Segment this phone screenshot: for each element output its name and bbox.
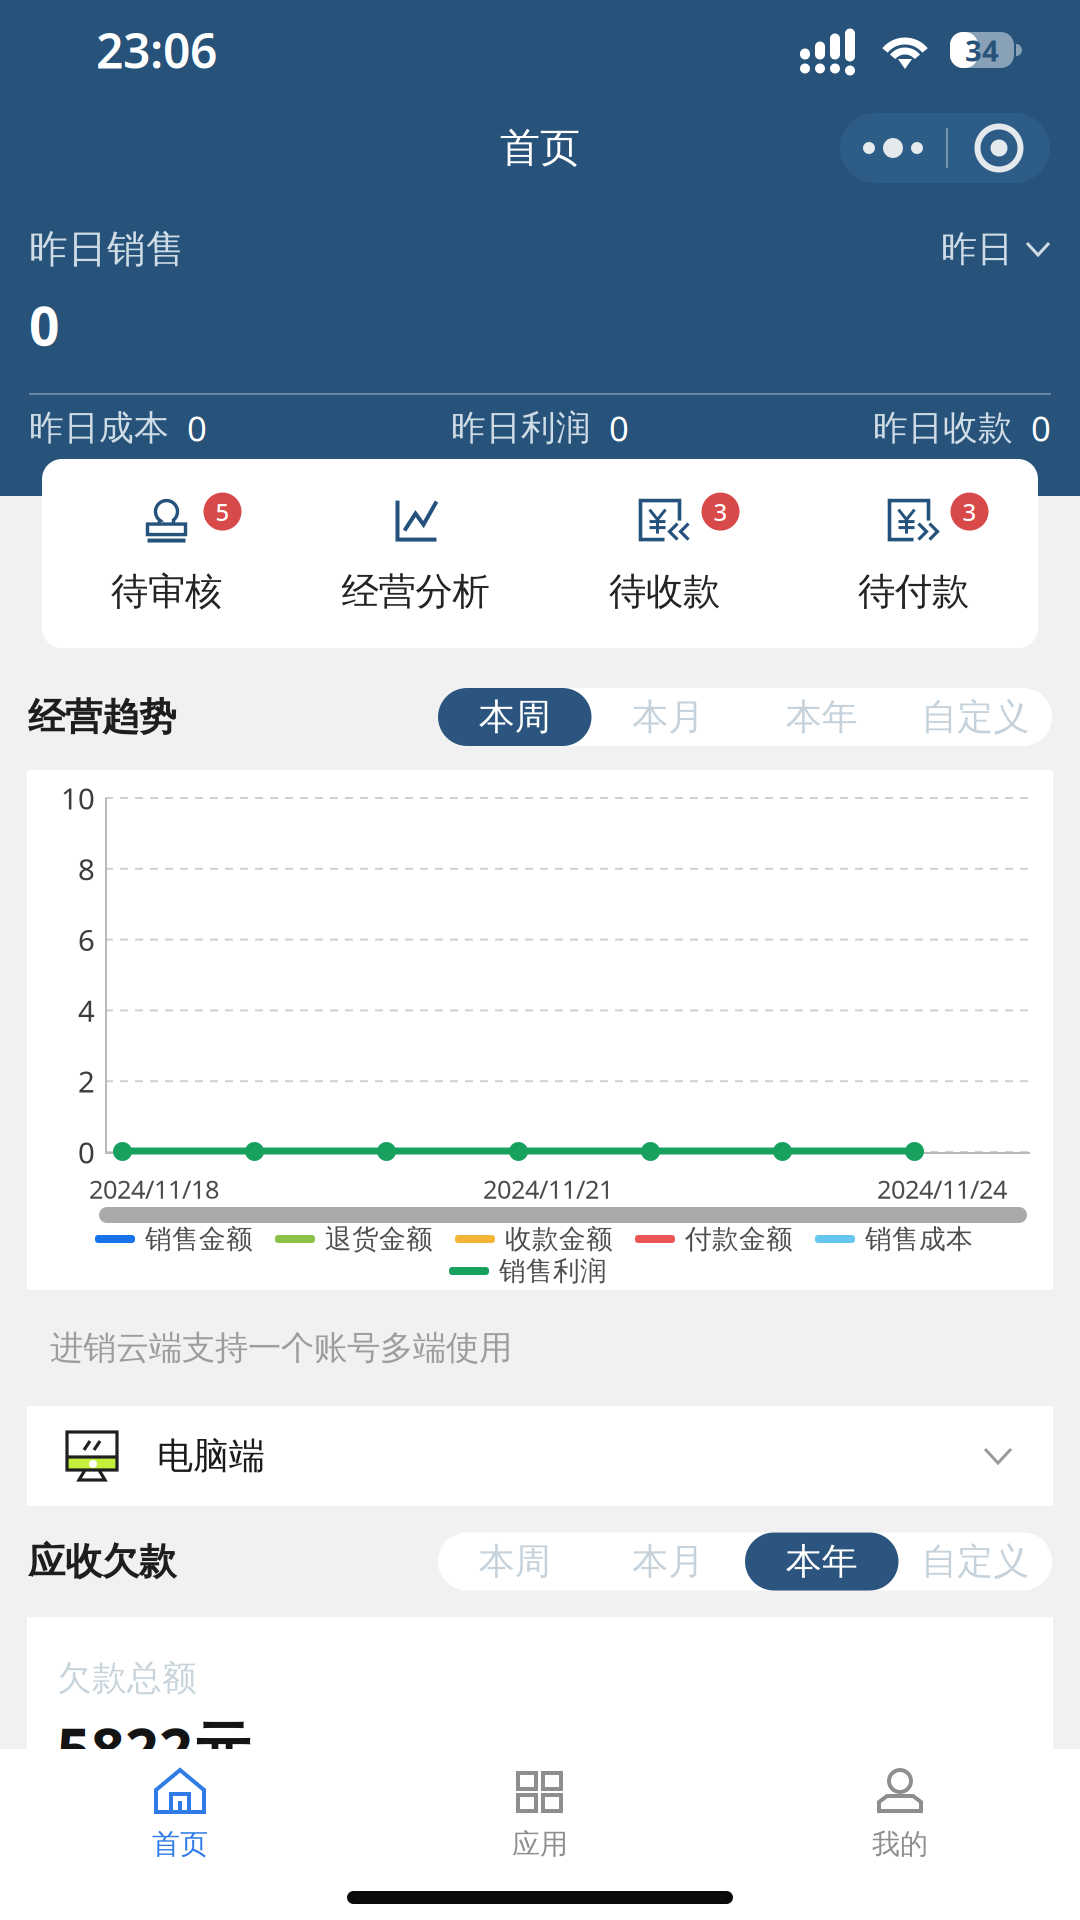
staticText: 3 [962,496,976,527]
staticText: 0 [609,405,629,451]
staticText: 待审核 [111,569,222,614]
button[interactable]: 首页 [0,1749,360,1867]
button[interactable]: 应用 [360,1749,720,1867]
staticText: 销售金额 [145,1223,253,1255]
staticText: 2024/11/21 [483,1172,613,1206]
staticText: 23:06 [96,18,217,82]
staticText: 本月 [632,1539,704,1584]
staticText: 本周 [479,1539,551,1584]
staticText: 昨日销售 [29,225,185,273]
button[interactable]: 自定义 [898,688,1052,746]
staticText: 0 [187,405,207,451]
staticText: 收款金额 [505,1223,613,1255]
button[interactable]: More [840,113,946,183]
button[interactable]: 5 [42,493,291,614]
staticText: 2024/11/24 [877,1172,1007,1206]
staticText: 首页 [152,1827,208,1861]
staticText: 本年 [786,1539,858,1584]
staticText: 退货金额 [325,1223,433,1255]
staticText: 销售利润 [499,1255,607,1287]
staticText: 2 [78,1062,95,1101]
staticText: 昨日收款 [873,407,1013,449]
staticText: 8 [78,849,95,888]
button[interactable]: 自定义 [898,1532,1052,1590]
staticText: 付款金额 [685,1223,793,1255]
staticText: 0 [78,1132,95,1171]
staticText: 0 [29,290,60,360]
staticText: 本年 [786,695,858,739]
staticText: 首页 [500,123,580,172]
button[interactable]: 我的 [720,1749,1080,1867]
staticText: 应收欠款 [28,1539,176,1584]
button[interactable]: 本月 [591,1532,745,1590]
staticText: 待收款 [609,569,720,614]
staticText: 欠款总额 [57,1657,197,1700]
button[interactable]: 昨日 [941,227,1051,271]
staticText: 本周 [479,695,551,739]
button[interactable]: 本周 [438,688,591,746]
button[interactable]: 本年 [745,1532,898,1590]
button[interactable]: Close [948,113,1050,183]
staticText: 3 [713,496,727,527]
staticText: 5822元 [57,1709,252,1787]
button[interactable]: 本周 [438,1532,591,1590]
staticText: 本月 [632,695,704,739]
staticText: 电脑端 [157,1434,265,1478]
staticText: 我的 [872,1827,928,1861]
button[interactable]: 本月 [591,688,745,746]
staticText: 6 [78,920,95,959]
button[interactable]: 3 [789,493,1038,614]
staticText: 进销云端支持一个账号多端使用 [50,1327,512,1368]
staticText: 5 [215,496,229,527]
staticText: 自定义 [921,695,1029,739]
button[interactable]: 经营分析 [291,493,540,614]
staticText: 2024/11/18 [89,1172,219,1206]
staticText: 昨日成本 [29,407,169,449]
staticText: 昨日 [941,227,1013,271]
staticText: 经营分析 [341,569,489,614]
button[interactable]: 3 [540,493,789,614]
staticText: 0 [1031,405,1051,451]
staticText: 4 [78,991,95,1030]
staticText: 10 [61,778,95,817]
staticText: 待付款 [858,569,969,614]
staticText: 昨日利润 [451,407,591,449]
button[interactable]: 本年 [745,688,898,746]
staticText: 应用 [512,1827,568,1861]
staticText: 自定义 [921,1539,1029,1584]
staticText: 34 [965,30,999,69]
staticText: 经营趋势 [28,694,176,740]
button[interactable]: 电脑端 [27,1406,1053,1506]
staticText: 销售成本 [865,1223,973,1255]
